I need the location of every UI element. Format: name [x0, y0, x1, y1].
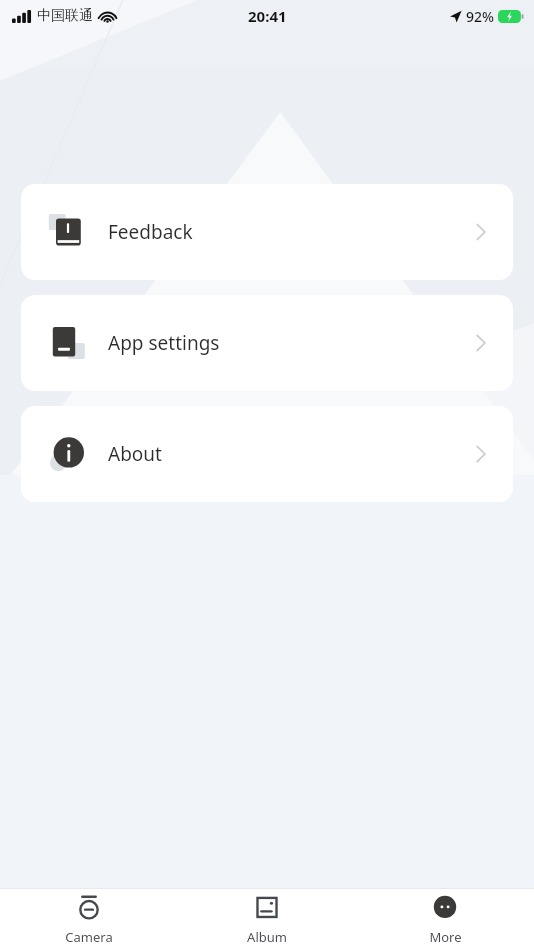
button[interactable]: Feedback	[21, 184, 513, 280]
button[interactable]: About	[21, 406, 513, 502]
button[interactable]: Camera	[0, 889, 178, 950]
staticText: App settings	[108, 330, 220, 356]
staticText: 中国联通	[37, 7, 93, 25]
staticText: Feedback	[108, 219, 193, 245]
staticText: Camera	[65, 928, 113, 946]
button[interactable]: More	[356, 889, 534, 950]
staticText: Album	[247, 928, 287, 946]
staticText: About	[108, 441, 162, 467]
button[interactable]: Album	[178, 889, 356, 950]
staticText: 20:41	[248, 6, 287, 26]
button[interactable]: App settings	[21, 295, 513, 391]
staticText: More	[429, 928, 462, 946]
staticText: 92%	[466, 7, 494, 26]
